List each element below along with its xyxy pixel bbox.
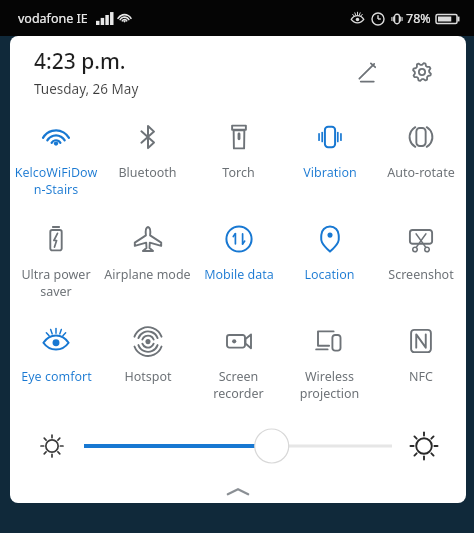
button[interactable]: Auto-rotate — [375, 108, 466, 210]
staticText: vodafone IE — [18, 10, 88, 27]
button[interactable]: KelcoWiFiDown-Stairs — [10, 108, 102, 210]
button[interactable]: Edit — [346, 50, 390, 94]
staticText: Airplane mode — [104, 266, 191, 283]
button[interactable]: Vibration — [284, 108, 375, 210]
button[interactable]: Wireless projection — [284, 312, 375, 412]
button[interactable]: Settings — [400, 50, 444, 94]
button[interactable] — [72, 426, 404, 466]
button[interactable]: Screenshot — [375, 210, 466, 312]
staticText: 4:23 p.m. — [34, 47, 126, 76]
staticText: 78% — [406, 10, 431, 27]
staticText: Ultra power saver — [12, 266, 100, 299]
staticText: Bluetooth — [118, 164, 177, 181]
staticText: NFC — [409, 368, 433, 385]
button[interactable]: Location — [284, 210, 375, 312]
button[interactable]: Collapse — [10, 480, 466, 503]
button[interactable]: Airplane mode — [102, 210, 193, 312]
button[interactable]: NFC — [375, 312, 466, 412]
staticText: Wireless projection — [286, 368, 373, 401]
staticText: Screenshot — [388, 266, 454, 283]
staticText: Vibration — [303, 164, 357, 181]
staticText: Hotspot — [124, 368, 172, 385]
button[interactable]: Eye comfort — [10, 312, 102, 412]
staticText: KelcoWiFiDown-Stairs — [12, 164, 100, 197]
staticText: Mobile data — [204, 266, 274, 283]
button[interactable]: Bluetooth — [102, 108, 193, 210]
button[interactable]: Ultra power saver — [10, 210, 102, 312]
button[interactable]: Screen recorder — [193, 312, 284, 412]
staticText: Screen recorder — [195, 368, 282, 401]
button[interactable]: High brightness — [404, 426, 444, 466]
button[interactable]: Low brightness — [32, 426, 72, 466]
button[interactable]: Torch — [193, 108, 284, 210]
staticText: Torch — [222, 164, 255, 181]
staticText: Location — [304, 266, 355, 283]
button[interactable]: Mobile data — [193, 210, 284, 312]
staticText: Eye comfort — [21, 368, 92, 385]
staticText: Tuesday, 26 May — [34, 80, 139, 98]
button[interactable]: Hotspot — [102, 312, 193, 412]
staticText: Auto-rotate — [387, 164, 455, 181]
